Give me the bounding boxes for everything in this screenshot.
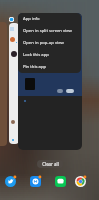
- button[interactable]: Lock this app: [18, 49, 81, 61]
- button[interactable]: Open in pop-up view: [18, 37, 81, 49]
- button[interactable]: [9, 23, 19, 144]
- button[interactable]: Clear all: [37, 160, 63, 168]
- button[interactable]: Messages: [30, 176, 41, 187]
- staticText: Open in split screen view: [23, 28, 72, 34]
- button[interactable]: LINE: [55, 176, 66, 187]
- button[interactable]: Chrome: [75, 176, 86, 187]
- button[interactable]: Pin this app: [18, 61, 81, 73]
- button[interactable]: App info: [18, 13, 81, 25]
- button[interactable]: [66, 89, 74, 93]
- button[interactable]: Twitter: [5, 176, 16, 187]
- staticText: App info: [23, 16, 40, 22]
- staticText: Lock this app: [23, 52, 49, 58]
- button[interactable]: [18, 13, 82, 150]
- staticText: Clear all: [42, 161, 59, 167]
- other: Twitter: [9, 17, 14, 22]
- button[interactable]: Open in split screen view: [18, 25, 81, 37]
- button[interactable]: [57, 89, 63, 93]
- staticText: Pin this app: [23, 64, 47, 70]
- staticText: Open in pop-up view: [23, 40, 64, 46]
